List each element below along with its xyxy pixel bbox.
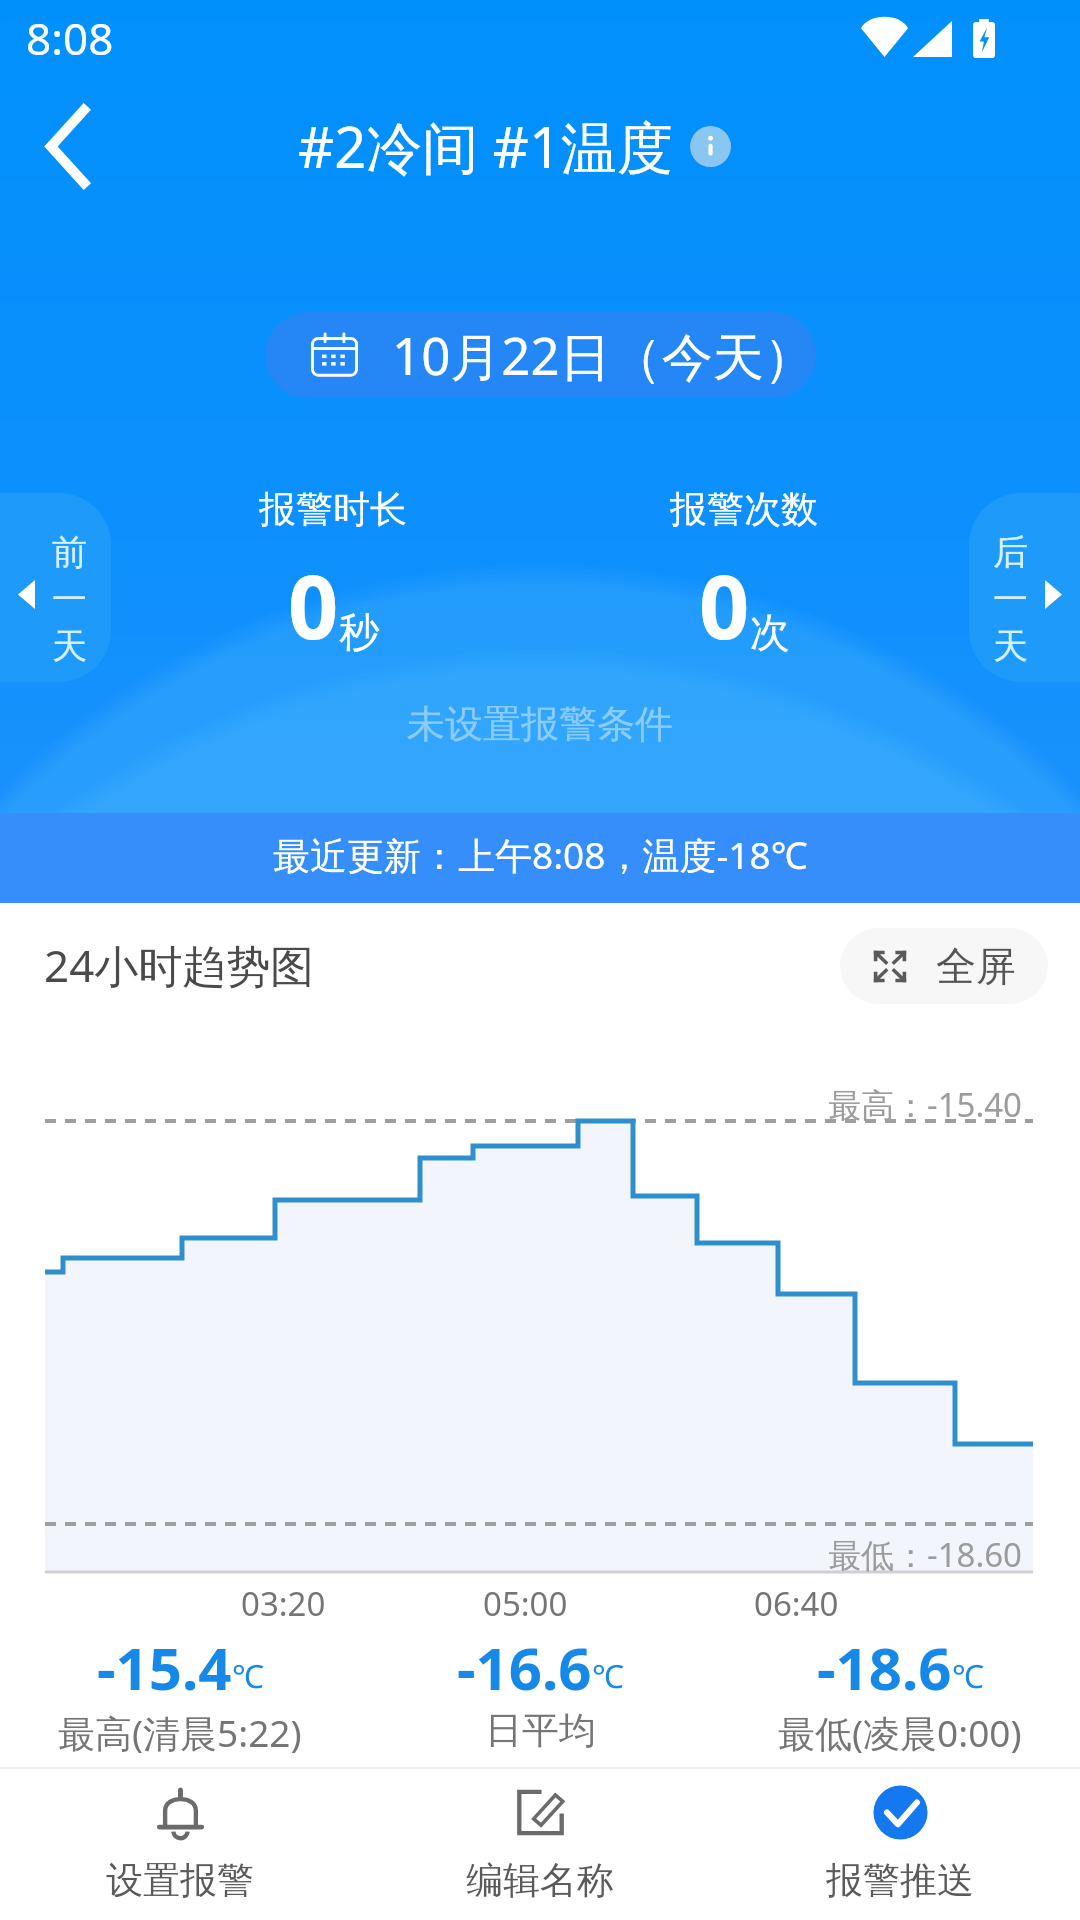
- staticText: ℃: [592, 1654, 624, 1698]
- staticText: 10月22日（今天）: [392, 320, 815, 390]
- button[interactable]: 最近更新：上午8:08，温度-18℃: [0, 813, 1080, 903]
- button[interactable]: 后 一 天: [969, 493, 1080, 682]
- other: Previous day: [18, 580, 35, 609]
- staticText: 03:20: [241, 1581, 326, 1626]
- staticText: 8:08: [26, 8, 114, 68]
- staticText: ℃: [232, 1654, 264, 1698]
- staticText: 次: [750, 607, 790, 657]
- staticText: 最近更新：上午8:08，温度-18℃: [273, 829, 808, 880]
- staticText: 后 一 天: [993, 530, 1028, 668]
- staticText: -15.4: [97, 1628, 232, 1707]
- staticText: 最高：-15.40: [828, 1082, 1022, 1127]
- button[interactable]: 全屏: [840, 928, 1048, 1004]
- staticText: 0: [699, 545, 750, 665]
- staticText: 报警次数: [670, 486, 818, 533]
- staticText: 编辑名称: [466, 1857, 614, 1904]
- button[interactable]: 设置报警: [0, 1768, 360, 1918]
- staticText: 报警推送: [826, 1857, 974, 1904]
- staticText: 最低(凌晨0:00): [778, 1707, 1022, 1758]
- staticText: 0: [288, 545, 339, 665]
- staticText: 最高(清晨5:22): [58, 1707, 302, 1758]
- staticText: 秒: [339, 607, 379, 657]
- staticText: 日平均: [485, 1707, 596, 1754]
- staticText: 最低：-18.60: [828, 1532, 1022, 1577]
- staticText: ℃: [952, 1654, 984, 1698]
- other: Next day: [1045, 580, 1062, 609]
- button[interactable]: 前 一 天: [0, 493, 111, 682]
- button[interactable]: 10月22日（今天）: [265, 312, 816, 398]
- staticText: 报警时长: [259, 486, 407, 533]
- button[interactable]: Back: [17, 96, 117, 196]
- staticText: 05:00: [483, 1581, 568, 1626]
- staticText: 前 一 天: [52, 530, 87, 668]
- button[interactable]: 编辑名称: [360, 1768, 720, 1918]
- staticText: 24小时趋势图: [44, 935, 315, 995]
- button[interactable]: 报警推送: [720, 1768, 1080, 1918]
- staticText: 设置报警: [106, 1857, 254, 1904]
- staticText: 06:40: [754, 1581, 839, 1626]
- staticText: -16.6: [457, 1628, 592, 1707]
- button[interactable]: Info: [687, 123, 733, 169]
- staticText: 未设置报警条件: [407, 700, 673, 748]
- staticText: #2冷间 #1温度: [298, 108, 673, 184]
- staticText: 全屏: [936, 941, 1016, 991]
- staticText: -18.6: [817, 1628, 952, 1707]
